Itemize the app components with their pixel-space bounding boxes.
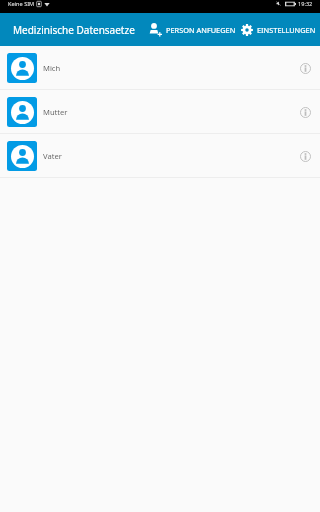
button[interactable]: PERSON ANFUEGEN — [145, 13, 241, 46]
button[interactable]: Vater — [0, 134, 320, 178]
staticText: 19:32 — [298, 0, 313, 8]
button[interactable]: Info — [291, 142, 319, 170]
staticText: Vater — [43, 151, 62, 161]
button[interactable]: Info — [291, 98, 319, 126]
button[interactable]: EINSTELLUNGEN — [241, 13, 319, 46]
staticText: PERSON ANFUEGEN — [166, 25, 236, 35]
staticText: Mich — [43, 63, 61, 73]
button[interactable]: Info — [291, 54, 319, 82]
staticText: Keine SIM — [8, 0, 35, 8]
staticText: Mutter — [43, 107, 68, 117]
staticText: Medizinische Datensaetze — [13, 23, 135, 37]
button[interactable]: Mutter — [0, 90, 320, 134]
button[interactable]: Mich — [0, 46, 320, 90]
staticText: EINSTELLUNGEN — [257, 25, 316, 35]
